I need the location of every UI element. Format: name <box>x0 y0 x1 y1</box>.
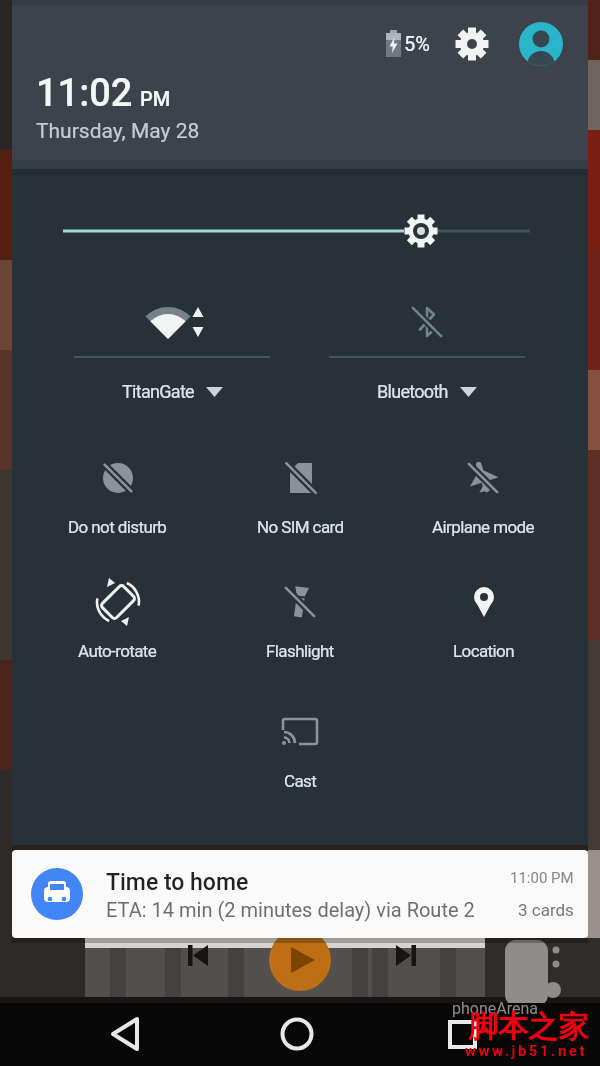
button[interactable]: Location <box>393 580 573 672</box>
staticText: 脚本之家 <box>468 1008 588 1046</box>
staticText: 5% <box>404 32 430 55</box>
staticText: Thursday, May 28 <box>36 119 200 144</box>
staticText: www.jb51.net <box>465 1042 588 1060</box>
staticText: PM <box>140 87 171 110</box>
button[interactable]: Cast <box>210 710 390 802</box>
button[interactable] <box>428 1005 498 1063</box>
button[interactable] <box>452 24 492 64</box>
button[interactable]: Time to home <box>12 850 588 938</box>
staticText: 11:00 PM <box>510 869 574 887</box>
button[interactable] <box>95 1005 165 1063</box>
staticText: Auto-rotate <box>78 641 157 661</box>
staticText: phoneArena <box>452 999 538 1018</box>
button[interactable]: Do not disturb <box>27 456 207 548</box>
button[interactable] <box>263 1005 333 1063</box>
staticText: No SIM card <box>257 517 344 537</box>
staticText: 3 cards <box>518 900 574 920</box>
button[interactable]: Airplane mode <box>393 456 573 548</box>
button[interactable] <box>55 210 540 254</box>
button[interactable]: Auto-rotate <box>27 580 207 672</box>
staticText: 11:02 <box>36 71 133 116</box>
button[interactable]: TitanGate <box>74 296 270 408</box>
button[interactable]: Bluetooth <box>329 296 525 408</box>
staticText: Location <box>453 641 514 661</box>
button[interactable] <box>519 22 563 66</box>
staticText: TitanGate <box>122 381 194 402</box>
staticText: Cast <box>284 771 317 791</box>
staticText: Time to home <box>106 869 249 896</box>
staticText: Flashlight <box>266 641 334 661</box>
staticText: Airplane mode <box>432 517 534 537</box>
staticText: Do not disturb <box>68 517 167 537</box>
button[interactable]: Flashlight <box>210 580 390 672</box>
staticText: ETA: 14 min (2 minutes delay) via Route … <box>106 898 475 921</box>
button[interactable]: No SIM card <box>210 456 390 548</box>
staticText: Bluetooth <box>377 381 448 402</box>
